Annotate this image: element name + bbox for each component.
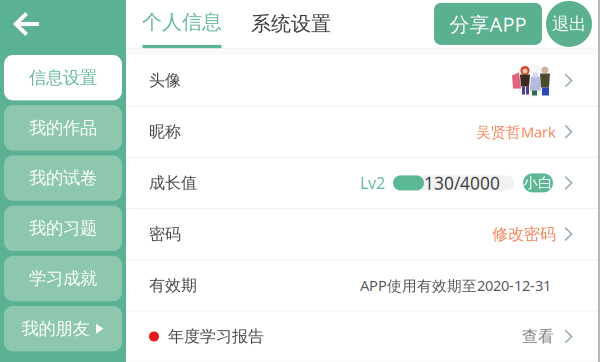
button[interactable]: 分享APP bbox=[434, 3, 542, 45]
staticText: 130/4000 bbox=[424, 171, 500, 194]
button[interactable]: Back bbox=[0, 0, 49, 49]
staticText: 查看 bbox=[522, 327, 554, 346]
staticText: 头像 bbox=[149, 71, 181, 90]
staticText: 年度学习报告 bbox=[168, 327, 264, 346]
button[interactable]: 我的作品 bbox=[4, 105, 122, 151]
staticText: 退出 bbox=[552, 13, 586, 35]
staticText: 吴贤哲Mark bbox=[476, 122, 556, 141]
staticText: 有效期 bbox=[149, 275, 197, 295]
staticText: 个人信息 bbox=[142, 10, 222, 34]
button[interactable]: 我的朋友 bbox=[4, 306, 122, 351]
button[interactable]: 个人信息 bbox=[126, 0, 222, 48]
button[interactable]: 我的试卷 bbox=[4, 155, 122, 201]
staticText: 成长值 bbox=[149, 173, 197, 193]
staticText: 密码 bbox=[149, 224, 181, 244]
staticText: 小白 bbox=[523, 174, 553, 192]
staticText: 分享APP bbox=[449, 11, 526, 37]
staticText: 我的作品 bbox=[29, 117, 97, 139]
button[interactable]: 信息设置 bbox=[4, 55, 122, 100]
button[interactable]: 学习成就 bbox=[4, 256, 122, 301]
staticText: 我的试卷 bbox=[29, 167, 97, 189]
staticText: 学习成就 bbox=[29, 268, 97, 289]
staticText: Lv2 bbox=[360, 172, 385, 193]
staticText: 昵称 bbox=[149, 122, 181, 142]
staticText: 我的朋友 bbox=[21, 318, 89, 339]
staticText: 系统设置 bbox=[251, 12, 331, 36]
staticText: 修改密码 bbox=[492, 224, 556, 244]
button[interactable]: 退出 bbox=[546, 1, 592, 47]
staticText: APP使用有效期至2020-12-31 bbox=[360, 275, 551, 295]
staticText: 我的习题 bbox=[29, 218, 97, 239]
button[interactable]: 系统设置 bbox=[222, 1, 331, 46]
staticText: 信息设置 bbox=[29, 67, 97, 88]
button[interactable]: 我的习题 bbox=[4, 206, 122, 251]
